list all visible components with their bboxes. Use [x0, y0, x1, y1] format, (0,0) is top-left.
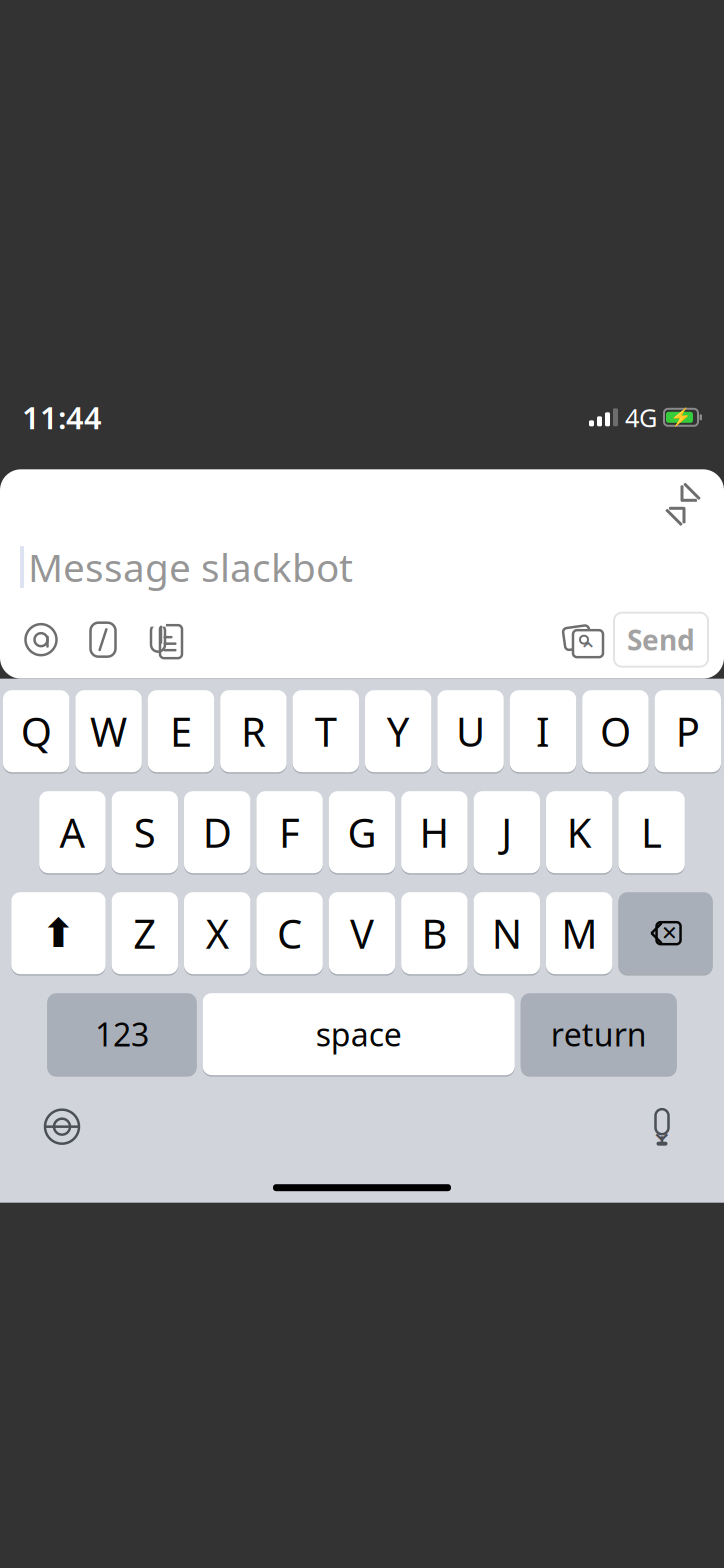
staticText: 4G: [625, 400, 657, 434]
button[interactable]: A: [39, 790, 106, 875]
staticText: W: [90, 705, 127, 758]
staticText: N: [492, 907, 522, 960]
staticText: A: [59, 806, 85, 859]
button[interactable]: space: [203, 992, 515, 1077]
button[interactable]: P: [655, 689, 721, 774]
button[interactable]: Z: [112, 891, 178, 976]
button[interactable]: Y: [365, 689, 431, 774]
button[interactable]: K: [546, 790, 612, 875]
button[interactable]: 123: [47, 992, 197, 1077]
button[interactable]: G: [329, 790, 395, 875]
button[interactable]: T: [293, 689, 359, 774]
staticText: Y: [387, 705, 410, 758]
staticText: Send: [627, 621, 695, 658]
button[interactable]: H: [401, 790, 468, 875]
button[interactable]: L: [618, 790, 685, 875]
button[interactable]: Dictate: [626, 1097, 698, 1157]
staticText: D: [203, 806, 232, 859]
staticText: O: [600, 705, 631, 758]
button[interactable]: Add photo: [552, 609, 614, 671]
staticText: Q: [21, 705, 52, 758]
button[interactable]: S: [112, 790, 178, 875]
button[interactable]: J: [474, 790, 540, 875]
button[interactable]: M: [546, 891, 612, 976]
staticText: K: [567, 806, 592, 859]
staticText: ⬆: [41, 910, 75, 956]
staticText: ✕: [661, 922, 678, 944]
button[interactable]: Q: [3, 689, 69, 774]
staticText: 11:44: [22, 397, 102, 438]
button[interactable]: V: [329, 891, 395, 976]
staticText: space: [316, 1013, 402, 1055]
staticText: S: [134, 806, 156, 859]
staticText: L: [641, 806, 662, 859]
staticText: return: [551, 1013, 647, 1055]
button[interactable]: B: [401, 891, 468, 976]
button[interactable]: Send: [614, 613, 708, 667]
staticText: E: [170, 705, 192, 758]
staticText: J: [501, 806, 512, 859]
button[interactable]: U: [437, 689, 504, 774]
button[interactable]: R: [220, 689, 287, 774]
button[interactable]: F: [256, 790, 323, 875]
staticText: ⚡: [670, 407, 692, 427]
button[interactable]: N: [474, 891, 540, 976]
button[interactable]: D: [184, 790, 250, 875]
button[interactable]: Shift: [11, 891, 106, 976]
staticText: H: [419, 806, 449, 859]
button[interactable]: O: [582, 689, 649, 774]
staticText: ⌃: [578, 638, 597, 663]
button[interactable]: I: [510, 689, 576, 774]
staticText: C: [277, 907, 302, 960]
staticText: F: [279, 806, 300, 859]
button[interactable]: Collapse: [654, 475, 712, 533]
staticText: R: [241, 705, 266, 758]
button[interactable]: C: [256, 891, 323, 976]
staticText: B: [421, 907, 447, 960]
staticText: U: [456, 705, 485, 758]
button[interactable]: Delete: [618, 891, 713, 976]
staticText: T: [315, 705, 337, 758]
button[interactable]: W: [75, 689, 142, 774]
staticText: Z: [133, 907, 156, 960]
staticText: X: [206, 907, 229, 960]
button[interactable]: Next keyboard: [26, 1097, 98, 1157]
staticText: Message slackbot: [28, 541, 353, 593]
button[interactable]: Slash command: [72, 609, 134, 671]
button[interactable]: E: [148, 689, 214, 774]
button[interactable]: return: [521, 992, 677, 1077]
staticText: 123: [95, 1013, 149, 1055]
staticText: M: [561, 907, 597, 960]
button[interactable]: X: [184, 891, 250, 976]
staticText: P: [676, 705, 700, 758]
button[interactable]: Mention someone: [10, 609, 72, 671]
staticText: G: [347, 806, 376, 859]
staticText: ⌄: [649, 1114, 674, 1147]
button[interactable]: Attach a file: [134, 609, 196, 671]
staticText: I: [536, 705, 550, 758]
staticText: V: [350, 907, 374, 960]
